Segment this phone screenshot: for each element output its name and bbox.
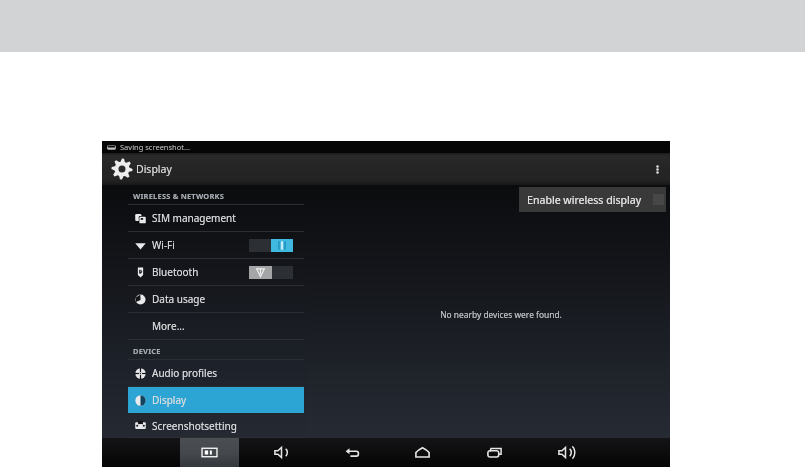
button[interactable]: Screenshotsetting	[128, 414, 304, 437]
staticText: Bluetooth	[152, 265, 199, 279]
button[interactable]: Volume up	[536, 438, 595, 467]
button[interactable]: Home	[393, 438, 452, 467]
staticText: SIM management	[152, 211, 236, 225]
staticText: DEVICE	[133, 346, 161, 356]
button[interactable]: Back	[323, 438, 382, 467]
button[interactable]: Screenshot	[180, 438, 239, 467]
staticText: More...	[152, 319, 185, 333]
button[interactable]: Recent apps	[465, 438, 524, 467]
staticText: Wi-Fi	[152, 238, 175, 252]
staticText: Enable wireless display	[527, 193, 642, 207]
button[interactable]: SIM management	[128, 205, 304, 231]
button[interactable]: Bluetooth	[128, 259, 304, 285]
staticText: Saving screenshot...	[120, 142, 191, 152]
button[interactable]: Data usage	[128, 286, 304, 312]
button[interactable]: Audio profiles	[128, 360, 304, 386]
staticText: Display	[136, 162, 172, 176]
button[interactable]: Volume down	[252, 438, 311, 467]
staticText: WIRELESS & NETWORKS	[133, 191, 225, 201]
staticText: No nearby devices were found.	[440, 309, 562, 320]
button[interactable]: Wi-Fi	[128, 232, 304, 258]
staticText: Data usage	[152, 292, 206, 306]
staticText: Display	[152, 393, 187, 407]
staticText: Screenshotsetting	[152, 419, 237, 433]
staticText: Audio profiles	[152, 366, 218, 380]
button[interactable]: More...	[128, 313, 304, 339]
button[interactable]: More options	[644, 153, 670, 185]
button[interactable]: Display	[128, 387, 304, 413]
button[interactable]: Enable wireless display	[519, 187, 666, 212]
